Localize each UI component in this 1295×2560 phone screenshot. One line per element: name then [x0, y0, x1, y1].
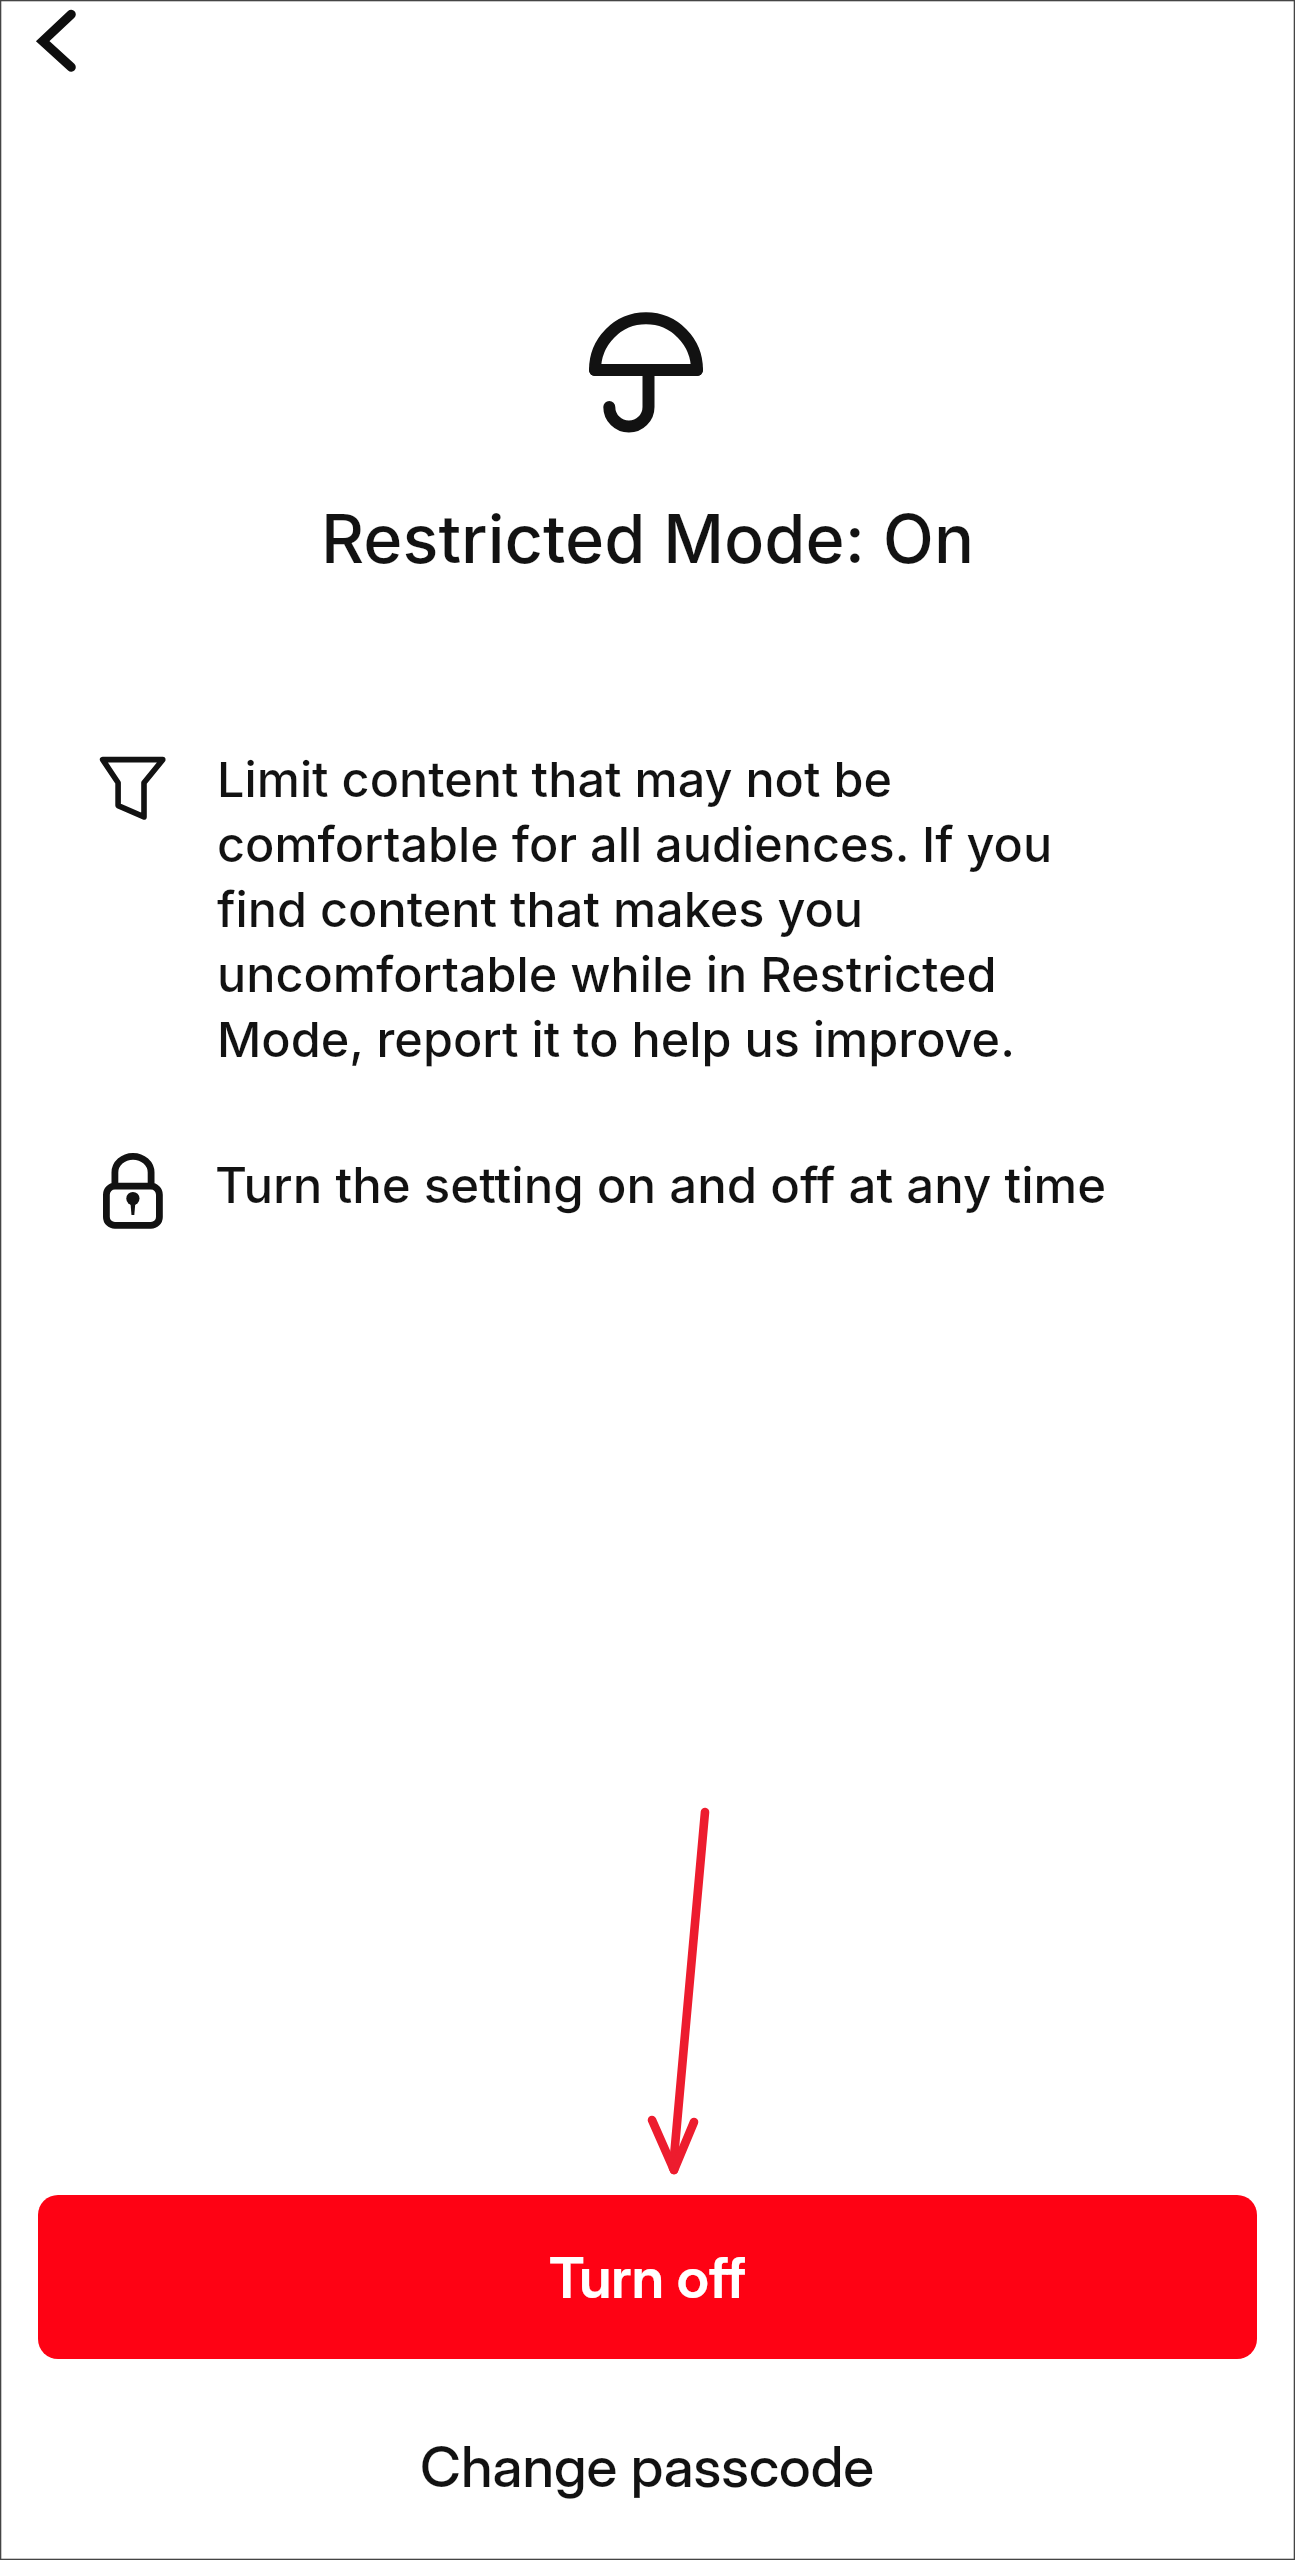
button[interactable]: Turn off [38, 2195, 1257, 2359]
button[interactable]: Back [0, 0, 112, 104]
button[interactable]: Change passcode [0, 2431, 1295, 2541]
staticText: Limit content that may not be comfortabl… [217, 745, 1117, 1070]
staticText: Turn off [549, 2243, 746, 2311]
staticText: Turn the setting on and off at any time [215, 1151, 1107, 1216]
staticText: Change passcode [420, 2431, 875, 2501]
staticText: Restricted Mode: On [321, 500, 975, 579]
